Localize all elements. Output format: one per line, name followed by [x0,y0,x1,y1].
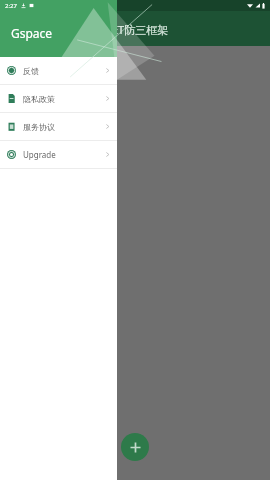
button[interactable]: Upgrade [0,141,117,168]
staticText: Gspace [11,25,53,41]
button[interactable]: Add [121,433,149,461]
staticText: 隐私政策 [23,94,55,104]
staticText: 2:27 [5,2,17,10]
staticText: Upgrade [23,149,56,160]
button[interactable]: 反馈 [0,57,117,84]
button[interactable]: 服务协议 [0,113,117,140]
staticText: ET防三框架 [112,22,169,37]
staticText: 反馈 [23,66,39,76]
button[interactable]: 隐私政策 [0,85,117,112]
staticText: 服务协议 [23,122,55,132]
